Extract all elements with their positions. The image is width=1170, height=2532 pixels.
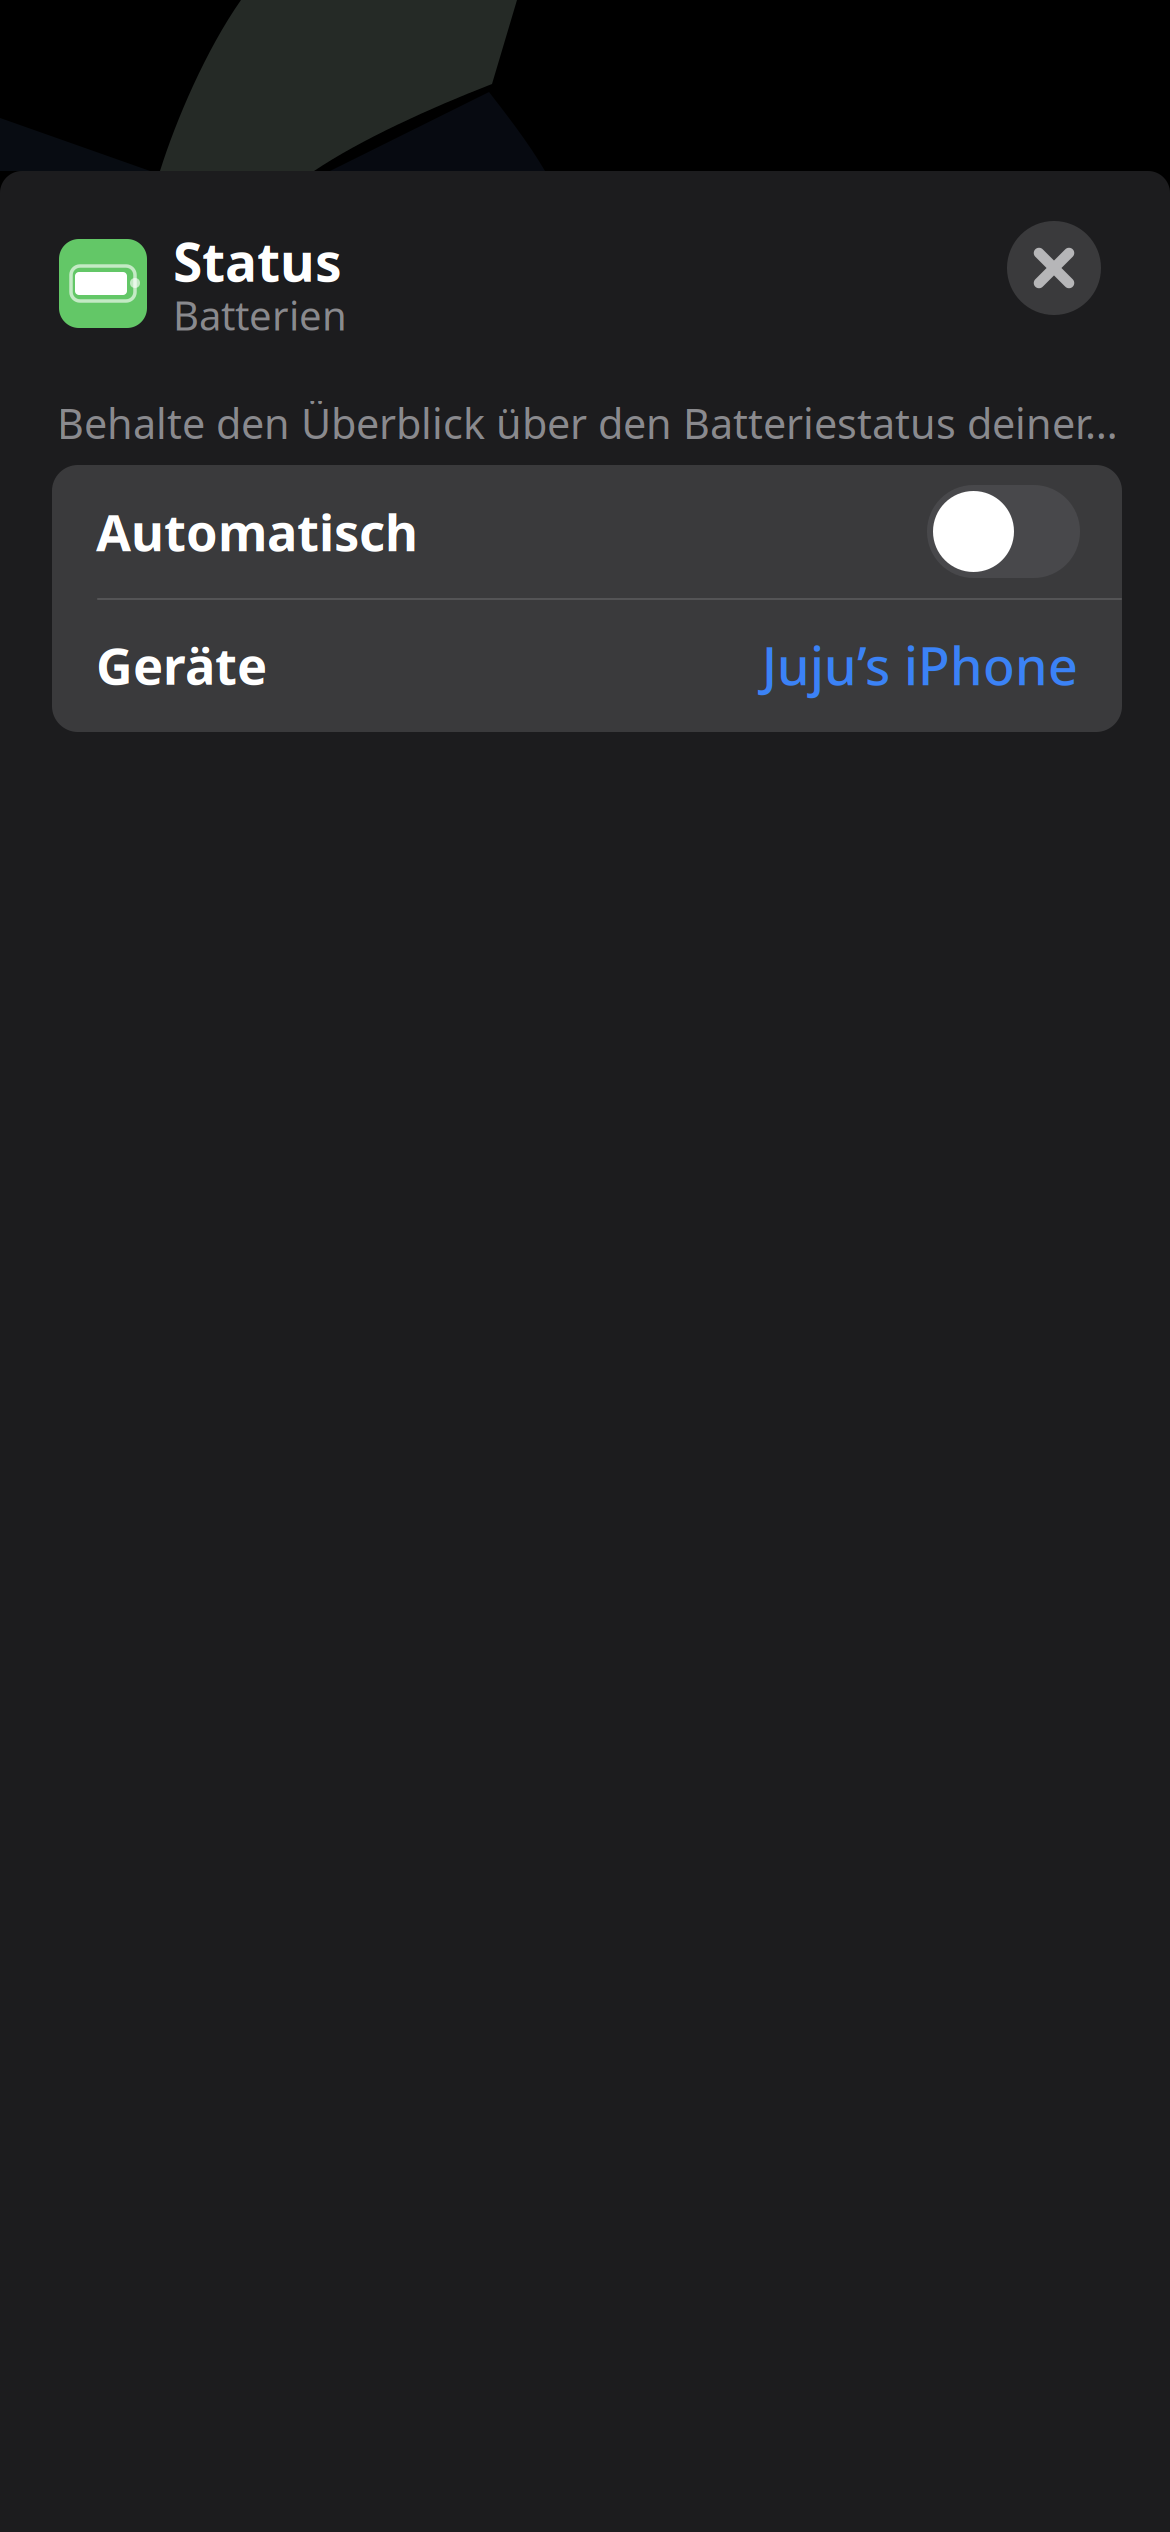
button[interactable]: Automatisch bbox=[52, 465, 1122, 598]
button[interactable]: Geräte bbox=[52, 598, 1122, 732]
staticText: Batterien bbox=[173, 288, 347, 341]
staticText: Juju’s iPhone bbox=[762, 630, 1078, 700]
staticText: Status bbox=[173, 226, 342, 296]
staticText: Automatisch bbox=[96, 498, 418, 565]
staticText: Behalte den Überblick über den Batteries… bbox=[57, 396, 1118, 450]
button[interactable]: Automatisch bbox=[927, 485, 1080, 578]
button[interactable]: Schließen bbox=[1007, 221, 1101, 315]
staticText: Geräte bbox=[96, 631, 267, 699]
